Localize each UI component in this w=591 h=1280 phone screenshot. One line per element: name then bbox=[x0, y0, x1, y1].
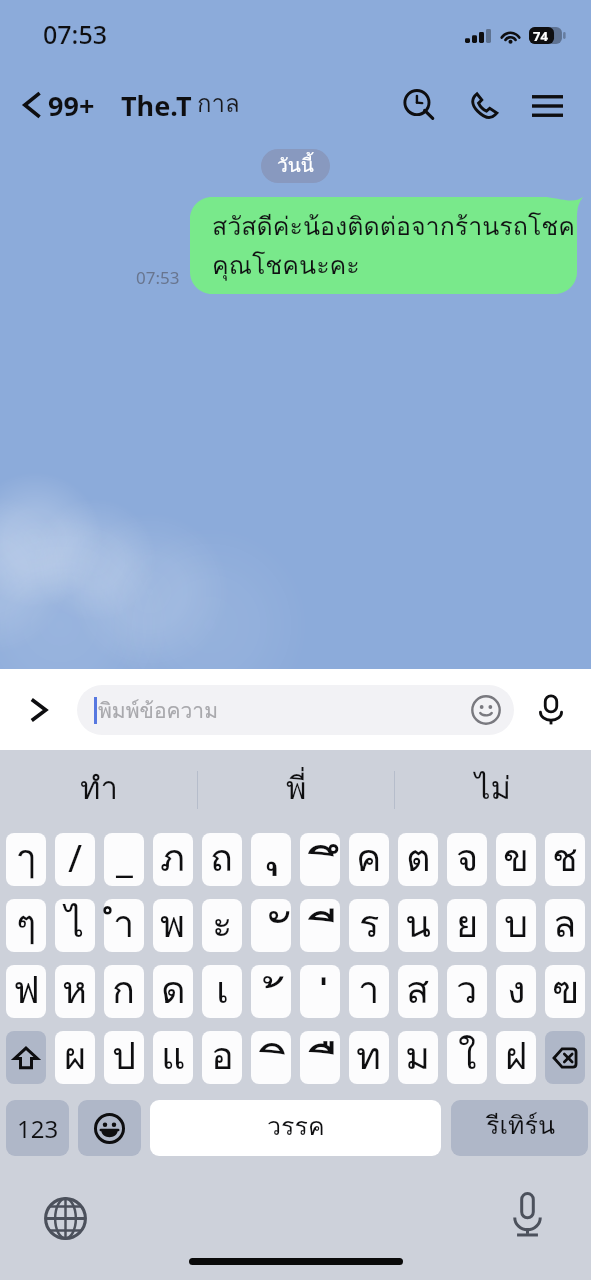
button[interactable] bbox=[545, 899, 585, 952]
button[interactable] bbox=[202, 899, 242, 952]
other: Backspace bbox=[553, 1048, 577, 1068]
staticText: ๆ bbox=[16, 893, 37, 953]
staticText: ช bbox=[552, 827, 578, 887]
button[interactable] bbox=[202, 965, 242, 1018]
button[interactable]: วันนี้ bbox=[261, 149, 330, 183]
staticText: 99+ bbox=[48, 87, 95, 124]
button[interactable] bbox=[398, 1031, 438, 1084]
staticText: จ bbox=[456, 827, 479, 887]
staticText: ้ bbox=[263, 971, 282, 1060]
button[interactable]: ไม่ bbox=[395, 750, 591, 830]
button[interactable] bbox=[55, 965, 95, 1018]
button[interactable] bbox=[55, 1031, 95, 1084]
button[interactable] bbox=[153, 899, 193, 952]
button[interactable] bbox=[251, 1031, 291, 1084]
button[interactable]: พี่ bbox=[198, 750, 394, 830]
button[interactable] bbox=[104, 833, 144, 886]
button[interactable] bbox=[6, 899, 46, 952]
button[interactable] bbox=[251, 899, 291, 952]
staticText: / bbox=[68, 831, 83, 883]
button[interactable] bbox=[545, 833, 585, 886]
button[interactable] bbox=[545, 965, 585, 1018]
staticText: ๅ bbox=[17, 827, 36, 887]
button[interactable] bbox=[349, 833, 389, 886]
button[interactable] bbox=[349, 965, 389, 1018]
button[interactable] bbox=[153, 965, 193, 1018]
button[interactable] bbox=[349, 1031, 389, 1084]
button[interactable]: พิมพ์ข้อความ bbox=[77, 685, 514, 735]
staticText: ว bbox=[456, 959, 478, 1019]
button[interactable] bbox=[6, 833, 46, 886]
button[interactable] bbox=[447, 1031, 487, 1084]
button[interactable] bbox=[55, 899, 95, 952]
button[interactable]: Shift bbox=[6, 1031, 46, 1084]
button[interactable] bbox=[251, 833, 291, 886]
button[interactable] bbox=[496, 833, 536, 886]
button[interactable] bbox=[153, 833, 193, 886]
staticText: The.T bbox=[121, 87, 192, 124]
staticText: ผ bbox=[64, 1025, 87, 1085]
button[interactable]: Change keyboard bbox=[34, 1187, 96, 1249]
staticText: ด bbox=[161, 959, 186, 1019]
button[interactable] bbox=[447, 899, 487, 952]
other: Shift bbox=[14, 1047, 38, 1069]
button[interactable] bbox=[300, 1031, 340, 1084]
button[interactable] bbox=[398, 833, 438, 886]
button[interactable] bbox=[153, 1031, 193, 1084]
staticText: ไ bbox=[65, 893, 85, 953]
staticText: 07:53 bbox=[136, 266, 180, 289]
button[interactable]: Emoji keyboard bbox=[78, 1100, 141, 1156]
staticText: ุ bbox=[260, 785, 282, 887]
button[interactable] bbox=[104, 899, 144, 952]
staticText: แ bbox=[161, 1025, 186, 1085]
button[interactable] bbox=[447, 833, 487, 886]
button[interactable]: Open menu bbox=[6, 669, 70, 750]
staticText: เ bbox=[216, 959, 229, 1019]
staticText: ี bbox=[320, 892, 339, 981]
button[interactable]: ทำ bbox=[0, 750, 197, 830]
button[interactable] bbox=[447, 965, 487, 1018]
staticText: ฃ bbox=[552, 959, 579, 1019]
staticText: ร bbox=[359, 893, 380, 953]
button[interactable]: 123 bbox=[6, 1100, 69, 1156]
staticText: ่ bbox=[312, 971, 331, 1060]
button[interactable] bbox=[398, 965, 438, 1018]
staticText: ต bbox=[406, 827, 431, 887]
button[interactable] bbox=[398, 899, 438, 952]
button[interactable] bbox=[202, 833, 242, 886]
button[interactable]: Call bbox=[456, 78, 511, 133]
button[interactable]: 99+ bbox=[0, 77, 99, 133]
staticText: ทำ bbox=[80, 763, 118, 812]
button[interactable]: Menu bbox=[520, 78, 575, 133]
button[interactable] bbox=[496, 899, 536, 952]
button[interactable] bbox=[300, 833, 340, 886]
button[interactable]: Search messages bbox=[392, 78, 447, 133]
button[interactable] bbox=[496, 1031, 536, 1084]
button[interactable]: Emoji bbox=[463, 687, 509, 733]
button[interactable]: วรรค bbox=[150, 1100, 441, 1156]
staticText: ะ bbox=[212, 893, 233, 953]
staticText: ฝ bbox=[505, 1025, 528, 1085]
button[interactable]: Voice message bbox=[519, 669, 583, 750]
button[interactable] bbox=[300, 899, 340, 952]
staticText: น bbox=[405, 893, 431, 953]
button[interactable] bbox=[104, 1031, 144, 1084]
staticText: พ bbox=[160, 893, 186, 953]
button[interactable] bbox=[6, 965, 46, 1018]
button[interactable] bbox=[251, 965, 291, 1018]
button[interactable]: รีเทิร์น bbox=[451, 1100, 588, 1156]
button[interactable]: สวัสดีค่ะน้องติดต่อจากร้านรถโชค คุณโชคนะ… bbox=[190, 197, 583, 294]
staticText: ฟ bbox=[13, 959, 40, 1019]
staticText: ไม่ bbox=[475, 763, 512, 812]
button[interactable] bbox=[496, 965, 536, 1018]
button[interactable]: Dictate bbox=[496, 1183, 558, 1245]
button[interactable] bbox=[349, 899, 389, 952]
staticText: _ bbox=[116, 831, 133, 883]
button[interactable]: Backspace bbox=[545, 1031, 585, 1084]
button[interactable] bbox=[202, 1031, 242, 1084]
staticText: สวัสดีค่ะน้องติดต่อจากร้านรถโชค คุณโชคนะ… bbox=[212, 206, 576, 285]
staticText: า bbox=[358, 959, 380, 1019]
button[interactable] bbox=[300, 965, 340, 1018]
button[interactable] bbox=[55, 833, 95, 886]
button[interactable] bbox=[104, 965, 144, 1018]
